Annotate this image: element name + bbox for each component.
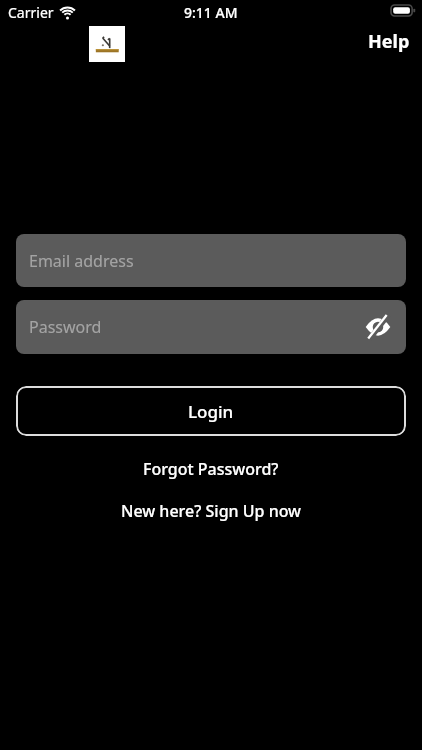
button[interactable]: Help xyxy=(368,29,410,54)
staticText: Help xyxy=(368,29,410,54)
staticText: Email address xyxy=(29,250,134,272)
staticText: Carrier xyxy=(8,3,54,22)
staticText: Login xyxy=(188,400,234,423)
button[interactable]: Login xyxy=(16,386,406,436)
staticText: Forgot Password? xyxy=(143,458,279,480)
staticText: 9:11 AM xyxy=(184,3,238,22)
button[interactable]: Email address xyxy=(16,234,406,287)
staticText: Password xyxy=(29,316,102,338)
button[interactable]: Forgot Password? xyxy=(143,458,279,480)
staticText: New here? Sign Up now xyxy=(121,500,302,522)
button[interactable]: Password xyxy=(16,300,406,354)
button[interactable]: New here? Sign Up now xyxy=(121,500,302,522)
